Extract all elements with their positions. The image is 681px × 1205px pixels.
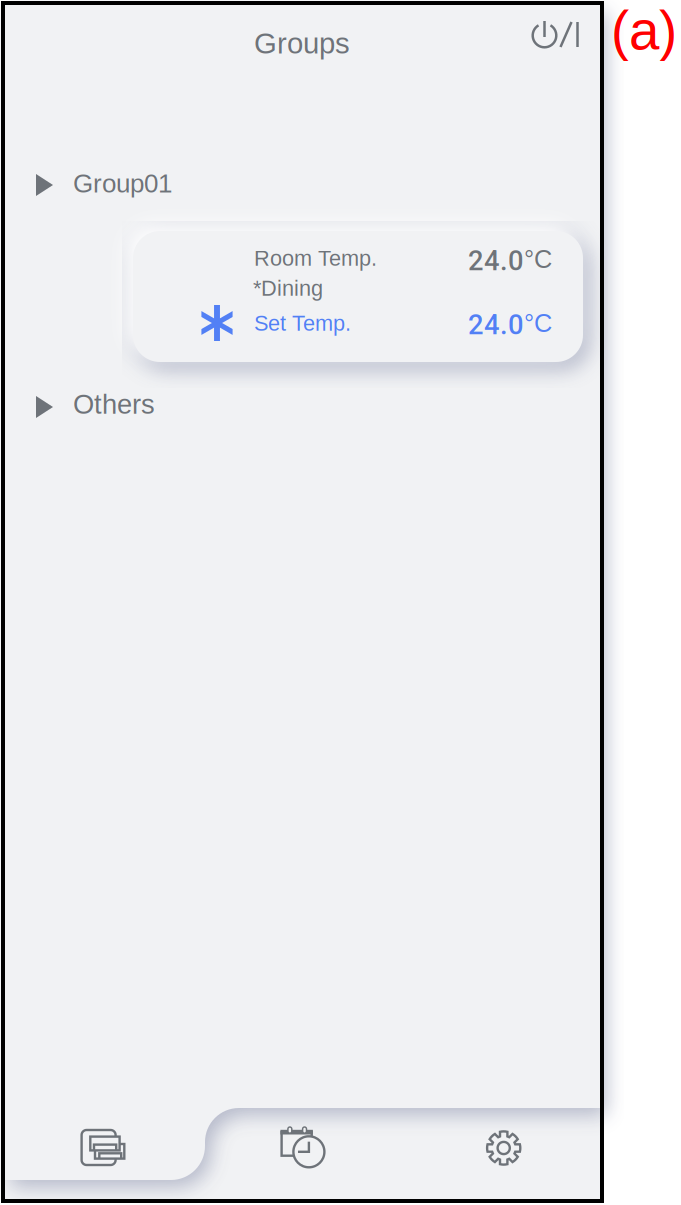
button[interactable]: Settings [486,1130,521,1165]
staticText: Groups [254,27,350,60]
button[interactable]: Power [524,12,587,57]
staticText: °C [524,309,552,337]
staticText: (a) [611,0,677,61]
staticText: Set Temp. [254,311,351,335]
button[interactable]: Others [5,389,600,441]
staticText: Others [73,389,155,419]
button[interactable]: Groups [82,1130,125,1165]
button[interactable]: Group01 [5,169,600,221]
staticText: *Dining [253,276,323,300]
staticText: °C [524,245,552,273]
staticText: 24.0 [468,245,524,277]
staticText: Room Temp. [254,246,377,270]
staticText: Group01 [73,169,172,198]
button[interactable]: Schedule [282,1128,328,1169]
button[interactable]: Room Temp. [133,231,583,362]
staticText: 24.0 [468,309,524,341]
